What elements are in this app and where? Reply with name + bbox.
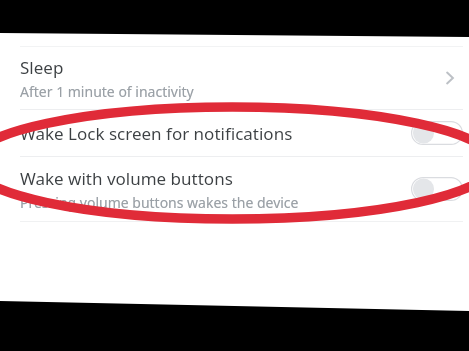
other: Open Sleep settings [437,65,463,91]
staticText: After 1 minute of inactivity [20,82,194,101]
button[interactable]: Toggle off [411,118,463,148]
button[interactable]: Toggle off [411,174,463,204]
staticText: Wake Lock screen for notifications [20,122,411,145]
button[interactable]: Wake with volume buttons [0,157,469,221]
button[interactable]: Wake Lock screen for notifications [0,110,469,156]
button[interactable]: Sleep [0,47,469,109]
staticText: Pressing volume buttons wakes the device [20,193,299,212]
staticText: Wake with volume buttons [20,167,233,190]
staticText: Sleep [20,56,64,79]
